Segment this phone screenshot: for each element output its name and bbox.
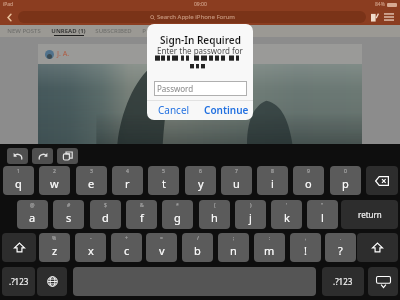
button[interactable]: New post [368,10,382,24]
button[interactable]: ( [199,200,230,229]
staticText: h [211,210,218,225]
button[interactable]: Hide keyboard [368,267,398,296]
staticText: v [159,243,165,258]
staticText: / [197,235,199,242]
button[interactable]: 2 [39,166,70,195]
other: Shift [372,242,383,253]
staticText: g [174,210,181,225]
staticText: * [176,202,179,209]
staticText: Password [157,83,194,94]
button[interactable]: Password [154,81,247,96]
button[interactable]: P [142,25,146,37]
staticText: b [194,243,201,258]
button[interactable]: ; [218,233,249,262]
button[interactable]: Backspace [366,166,398,195]
button[interactable]: 4 [112,166,143,195]
button[interactable]: return [341,200,398,229]
button[interactable]: .?123 [322,267,364,296]
staticText: : [269,235,271,242]
button[interactable]: ' [271,200,302,229]
staticText: @ [30,202,35,209]
staticText: NEW POSTS [7,27,41,35]
staticText: 2 [53,168,56,175]
button[interactable]: .?123 [2,267,35,296]
button[interactable]: NEW POSTS [7,25,41,37]
staticText: 9 [307,168,310,175]
staticText: i [271,176,274,191]
staticText: . [340,235,342,242]
staticText: # [67,202,71,209]
other: Switch keyboard [47,276,58,287]
button[interactable]: SUBSCRIBED [95,25,132,37]
staticText: Continue [204,103,249,117]
button[interactable]: ) [235,200,266,229]
staticText: return [358,209,382,220]
button[interactable]: Switch keyboard [37,267,67,296]
staticText: Search Apple iPhone Forum [157,13,235,21]
staticText: .?123 [333,276,353,287]
button[interactable]: = [146,233,177,262]
button[interactable]: Paste [57,148,78,164]
staticText: k [284,210,290,225]
button[interactable]: & [126,200,157,229]
button[interactable]: 9 [293,166,324,195]
staticText: t [162,176,166,191]
staticText: e [88,176,95,191]
button[interactable]: + [111,233,142,262]
other: Hide keyboard [376,276,391,288]
staticText: 84% [375,1,385,8]
button[interactable]: , [290,233,321,262]
staticText: y [198,176,204,191]
staticText: z [52,243,58,258]
button[interactable]: Back [0,9,18,25]
button[interactable]: UNREAD (1) [51,25,86,37]
staticText: " [321,202,324,209]
button[interactable]: # [53,200,84,229]
button[interactable]: Continue [200,100,253,120]
staticText: o [305,176,312,191]
button[interactable]: % [39,233,70,262]
button[interactable]: Cancel [147,100,200,120]
staticText: f [140,210,144,225]
staticText: SUBSCRIBED [95,27,132,35]
button[interactable]: " [307,200,338,229]
staticText: p [342,176,349,191]
other: Shift [14,242,25,253]
button[interactable]: Redo [32,148,53,164]
button[interactable]: $ [90,200,121,229]
button[interactable]: Undo [7,148,28,164]
staticText: ; [233,235,235,242]
button[interactable]: Shift [357,233,398,262]
button[interactable]: 7 [221,166,252,195]
staticText: ' [286,202,288,209]
staticText: d [102,210,109,225]
staticText: iPad [3,1,14,8]
staticText: 09:00 [194,1,207,8]
button[interactable]: 6 [185,166,216,195]
button[interactable]: . [325,233,356,262]
button[interactable]: Search Apple iPhone Forum [18,11,366,23]
staticText: % [52,235,57,242]
staticText: m [264,243,275,258]
button[interactable]: * [162,200,193,229]
button[interactable]: 5 [148,166,179,195]
button[interactable]: 1 [3,166,34,195]
button[interactable]: 3 [76,166,107,195]
button[interactable]: - [75,233,106,262]
button[interactable]: / [182,233,213,262]
button[interactable]: @ [17,200,48,229]
button[interactable]: 0 [330,166,361,195]
button[interactable]: Shift [2,233,36,262]
staticText: q [15,176,22,191]
staticText: = [160,235,163,242]
button[interactable]: 8 [257,166,288,195]
button[interactable]: Menu [382,10,396,24]
staticText: a [29,210,36,225]
staticText: c [124,243,130,258]
staticText: Enter the password for [157,45,243,56]
staticText: n [230,243,237,258]
staticText: 5 [162,168,165,175]
staticText: l [321,210,324,225]
button[interactable]: : [254,233,285,262]
